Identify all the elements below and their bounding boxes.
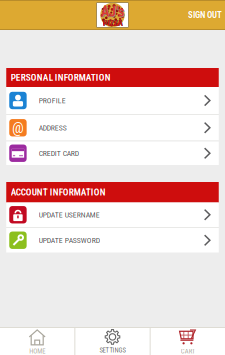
staticText: ACCOUNT INFORMATION <box>11 187 106 198</box>
button[interactable]: HOME <box>0 327 74 355</box>
staticText: SIGN OUT <box>188 10 222 20</box>
staticText: SETTINGS <box>99 346 125 354</box>
staticText: PIZZA <box>102 18 122 28</box>
staticText: CART <box>181 347 195 355</box>
button[interactable]: SETTINGS <box>75 327 150 355</box>
staticText: AJ's <box>102 4 125 21</box>
staticText: PIZZA <box>103 19 123 28</box>
button[interactable]: SIGN OUT <box>180 2 225 28</box>
staticText: PROFILE <box>39 96 66 105</box>
staticText: UPDATE USERNAME <box>39 210 100 219</box>
button[interactable]: UPDATE USERNAME <box>6 202 219 227</box>
staticText: UPDATE PASSWORD <box>39 236 100 245</box>
staticText: PERSONAL INFORMATION <box>11 72 111 83</box>
button[interactable]: UPDATE PASSWORD <box>6 228 219 252</box>
staticText: @ <box>12 119 24 137</box>
button[interactable]: PROFILE <box>6 87 219 114</box>
button[interactable]: CART <box>151 327 225 355</box>
staticText: CREDIT CARD <box>39 149 79 158</box>
button[interactable]: @ <box>6 115 219 140</box>
button[interactable]: CREDIT CARD <box>6 141 219 165</box>
staticText: AJ's <box>101 4 124 20</box>
staticText: ADDRESS <box>39 123 67 132</box>
staticText: HOME <box>29 347 45 355</box>
